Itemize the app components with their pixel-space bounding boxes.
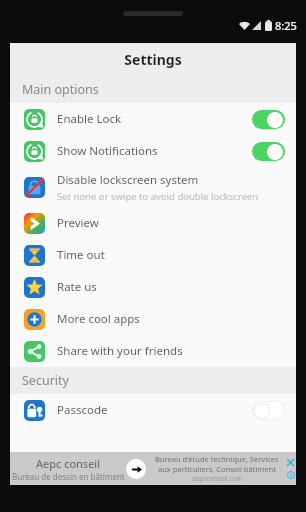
staticText: 8:25 — [275, 18, 297, 33]
staticText: Share with your friends — [57, 343, 183, 359]
button[interactable]: Preview — [10, 207, 296, 239]
staticText: Passcode — [57, 402, 108, 418]
staticText: Rate us — [57, 279, 97, 295]
staticText: Show Notifications — [57, 143, 158, 159]
staticText: Aepc conseil — [36, 456, 101, 471]
staticText: Preview — [57, 215, 99, 231]
button[interactable]: Rate us — [10, 271, 296, 303]
button[interactable]: More cool apps — [10, 303, 296, 335]
staticText: More cool apps — [57, 311, 140, 327]
button[interactable]: Passcode — [10, 394, 296, 426]
button[interactable]: Show Notifications — [10, 135, 296, 167]
button[interactable]: Off — [252, 401, 285, 420]
button[interactable]: Go — [126, 459, 146, 479]
staticText: aux particuliers, Conseil bâtiment — [158, 464, 276, 474]
button[interactable]: Disable lockscreen system — [10, 167, 296, 207]
staticText: Time out — [57, 247, 105, 263]
staticText: Settings — [124, 50, 182, 69]
staticText: Bureau de dessin en bâtiment — [12, 471, 125, 482]
button[interactable]: Ad info — [286, 470, 295, 479]
button[interactable]: Aepc conseil — [10, 452, 296, 485]
button[interactable]: Close ad — [286, 458, 295, 467]
staticText: Main options — [22, 81, 99, 98]
staticText: Set none or swipe to avoid double locksc… — [57, 190, 259, 203]
button[interactable]: Enable Lock — [10, 103, 296, 135]
staticText: Bureau d'étude technique, Services — [155, 454, 279, 464]
staticText: Security — [22, 372, 69, 389]
button[interactable]: Time out — [10, 239, 296, 271]
staticText: Enable Lock — [57, 111, 122, 127]
staticText: aepcconseil.com — [192, 474, 243, 483]
button[interactable]: Share with your friends — [10, 335, 296, 367]
staticText: Disable lockscreen system — [57, 172, 199, 188]
button[interactable]: On — [252, 142, 285, 161]
button[interactable]: On — [252, 110, 285, 129]
